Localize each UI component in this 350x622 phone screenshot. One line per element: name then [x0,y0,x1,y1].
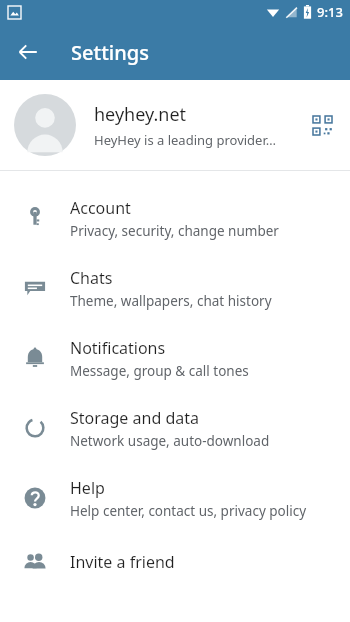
button[interactable]: Help [0,463,350,533]
staticText: Privacy, security, change number [70,222,279,240]
button[interactable]: heyhey.net [0,80,350,170]
staticText: Message, group & call tones [70,362,249,380]
staticText: Theme, wallpapers, chat history [70,292,272,310]
staticText: Notifications [70,337,166,359]
staticText: 9:13 [317,3,343,21]
staticText: HeyHey is a leading provider… [94,131,276,149]
staticText: Network usage, auto-download [70,432,270,450]
staticText: Invite a friend [70,551,175,573]
button[interactable]: QR code [300,103,344,147]
button[interactable]: Chats [0,253,350,323]
staticText: Help center, contact us, privacy policy [70,502,307,520]
staticText: Chats [70,267,113,289]
staticText: heyhey.net [94,102,187,127]
staticText: Account [70,197,131,219]
button[interactable]: Back [8,32,48,72]
staticText: Storage and data [70,407,199,429]
button[interactable]: Storage and data [0,393,350,463]
staticText: Help [70,477,105,499]
button[interactable]: Invite a friend [0,533,350,591]
staticText: Settings [71,39,149,66]
button[interactable]: Notifications [0,323,350,393]
button[interactable]: Account [0,183,350,253]
